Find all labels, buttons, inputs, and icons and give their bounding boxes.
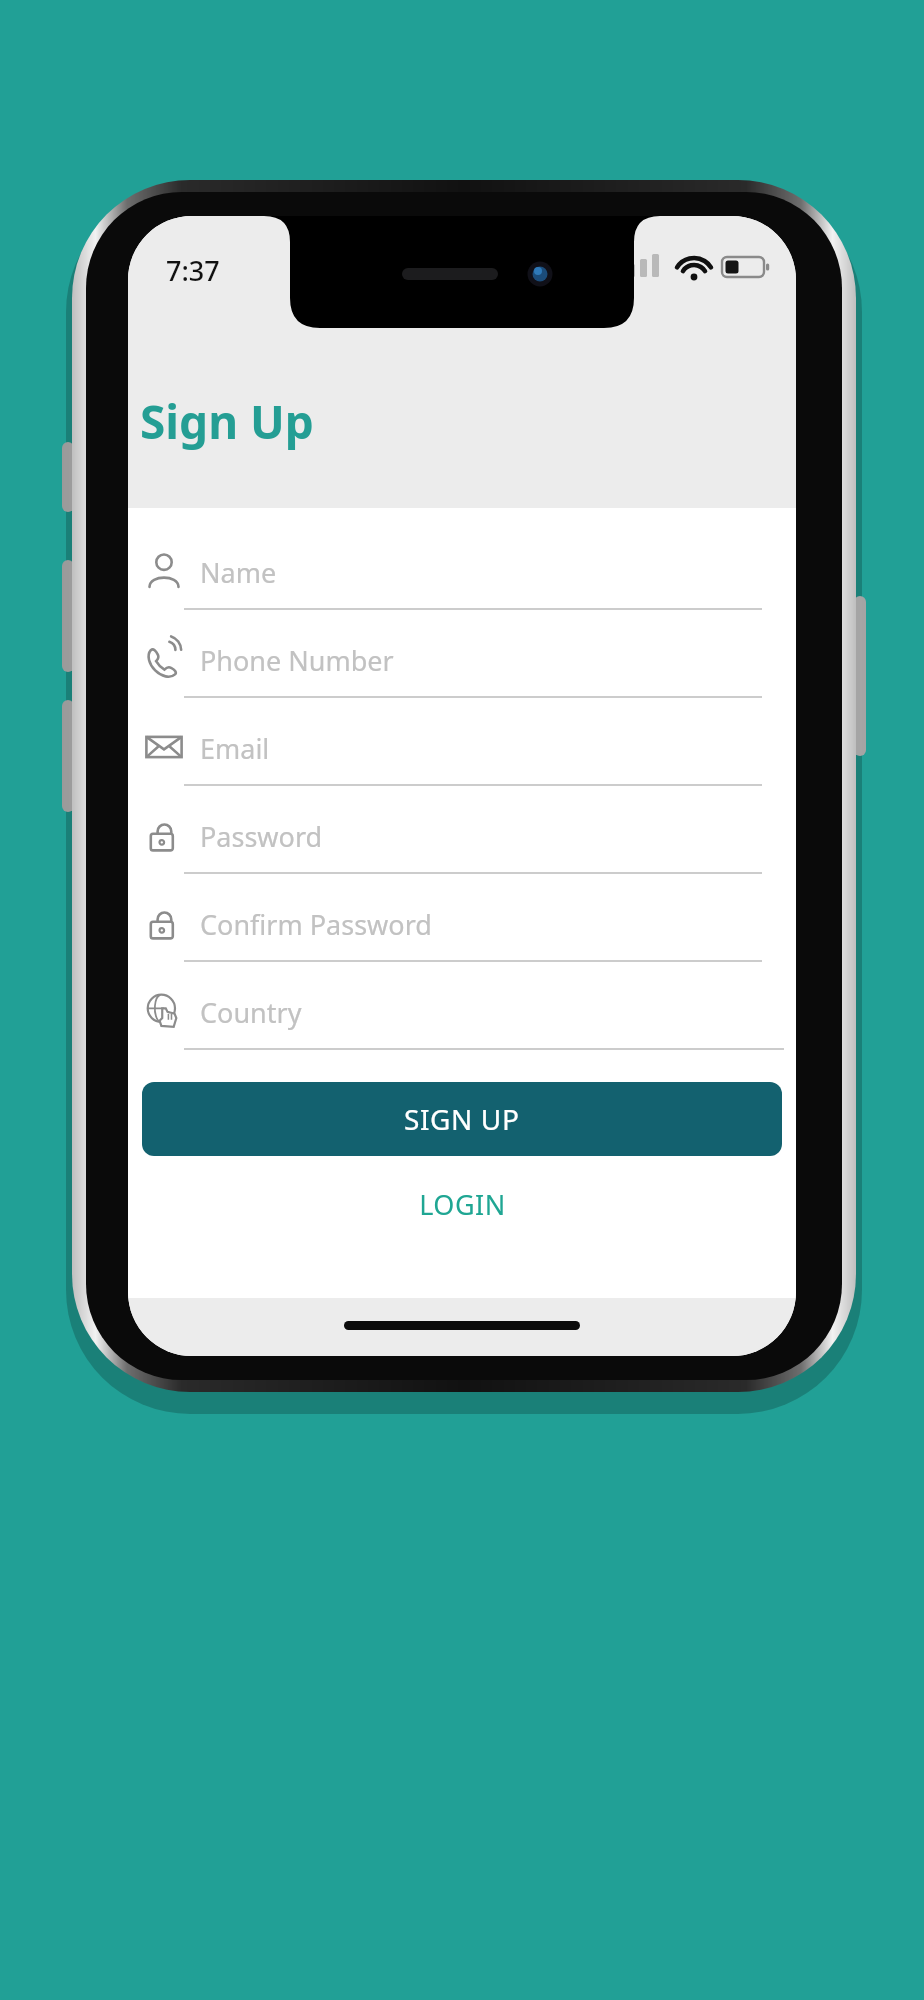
button[interactable]: Country [140, 976, 784, 1064]
button[interactable]: Name [140, 536, 784, 624]
staticText: Email [200, 730, 270, 767]
button[interactable]: Phone Number [140, 624, 784, 712]
button[interactable]: Password [140, 800, 784, 888]
button[interactable]: LOGIN [140, 1156, 784, 1252]
button[interactable]: Email [140, 712, 784, 800]
staticText: Sign Up [140, 390, 314, 453]
staticText: 7:37 [166, 252, 220, 289]
staticText: Country [200, 994, 302, 1031]
staticText: LOGIN [419, 1186, 506, 1223]
staticText: Confirm Password [200, 906, 432, 943]
staticText: Name [200, 554, 277, 591]
staticText: Password [200, 818, 323, 855]
staticText: SIGN UP [404, 1100, 520, 1138]
staticText: Phone Number [200, 642, 394, 679]
button[interactable]: Confirm Password [140, 888, 784, 976]
button[interactable]: SIGN UP [142, 1082, 782, 1156]
